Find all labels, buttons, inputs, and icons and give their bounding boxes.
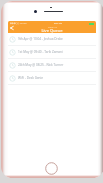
staticText: WiFi - Desk Genie bbox=[18, 76, 44, 80]
staticText: ●●●○○ Carrier bbox=[10, 22, 27, 25]
staticText: 9:41 AM bbox=[54, 22, 62, 25]
button[interactable]: WiFi - Desk Genie bbox=[8, 72, 96, 84]
button[interactable]: Home bbox=[45, 162, 58, 175]
button[interactable]: 9th Apr @ 10:04 - Joshua Drake bbox=[8, 33, 96, 45]
staticText: 24th May @ 08:25 - Nick Turner bbox=[18, 63, 64, 67]
button[interactable]: 1st May @ 09:40 - Tarik Zamani bbox=[8, 46, 96, 58]
staticText: Desk 14 bbox=[48, 25, 57, 28]
staticText: 1st May @ 09:40 - Tarik Zamani bbox=[18, 50, 63, 54]
staticText: Live Queue bbox=[41, 28, 63, 33]
button[interactable]: 24th May @ 08:25 - Nick Turner bbox=[8, 59, 96, 71]
button[interactable]: Back bbox=[9, 25, 15, 31]
staticText: 9th Apr @ 10:04 - Joshua Drake bbox=[18, 37, 63, 41]
